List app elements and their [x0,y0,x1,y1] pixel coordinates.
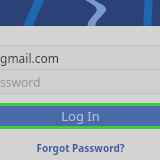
staticText: gmail.com [0,50,59,66]
button[interactable]: Forgot Password? [36,141,125,155]
staticText: ssword [0,74,41,90]
staticText: Forgot Password? [36,141,125,155]
button[interactable]: Log In [0,103,160,129]
button[interactable]: ssword [0,70,160,93]
button[interactable]: gmail.com [0,46,160,69]
staticText: Log In [61,107,100,125]
